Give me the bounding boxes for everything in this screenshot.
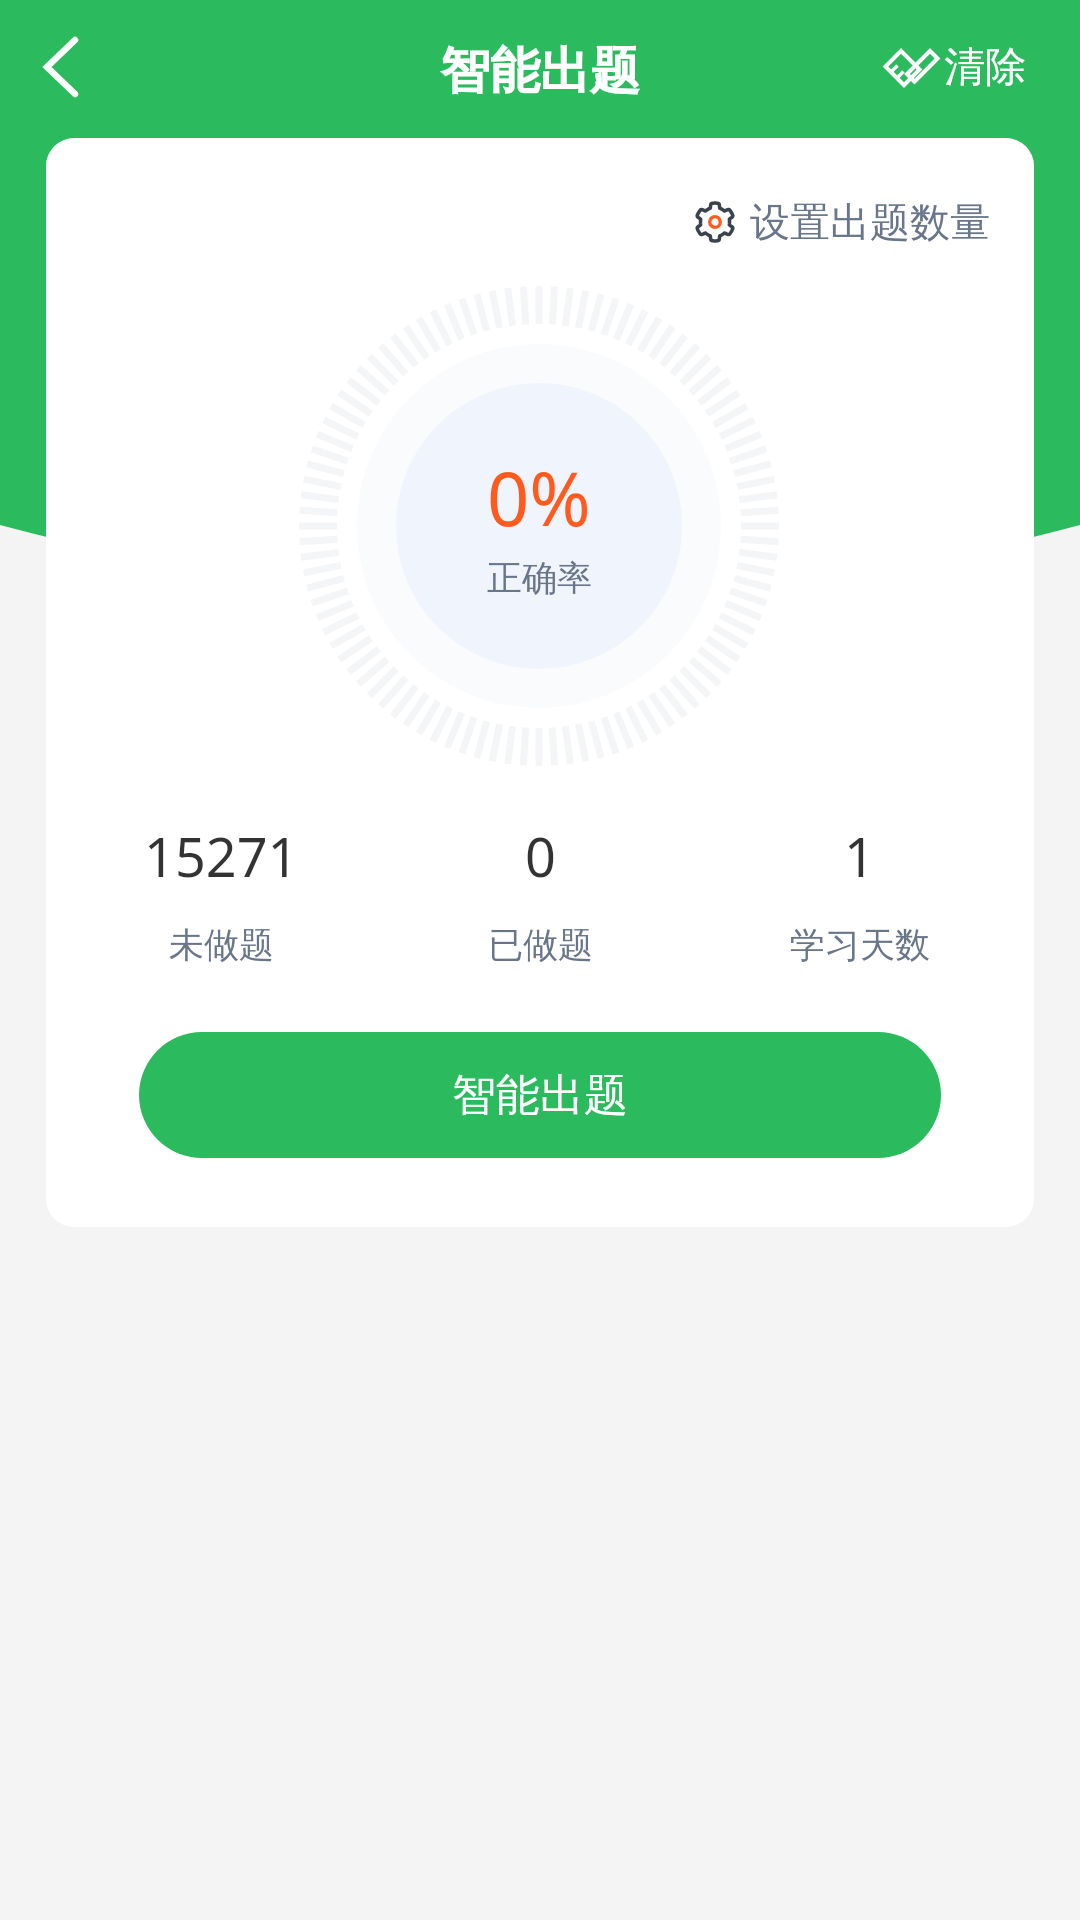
button[interactable]: 智能出题 bbox=[139, 1032, 941, 1158]
button[interactable]: 15271 bbox=[61, 819, 381, 967]
staticText: 智能出题 bbox=[0, 40, 1080, 103]
button[interactable]: Back bbox=[12, 22, 102, 112]
button[interactable]: 清除 bbox=[872, 23, 1026, 113]
staticText: 未做题 bbox=[169, 923, 274, 967]
staticText: 智能出题 bbox=[452, 1068, 628, 1123]
staticText: 已做题 bbox=[488, 923, 593, 967]
staticText: 15271 bbox=[144, 819, 299, 893]
staticText: 学习天数 bbox=[790, 923, 930, 967]
staticText: 0% bbox=[487, 447, 591, 548]
staticText: 1 bbox=[844, 819, 875, 893]
staticText: 正确率 bbox=[487, 556, 592, 600]
button[interactable]: 0 bbox=[381, 819, 700, 967]
staticText: 设置出题数量 bbox=[750, 197, 990, 247]
staticText: 清除 bbox=[944, 42, 1026, 94]
button[interactable]: 1 bbox=[700, 819, 1019, 967]
button[interactable]: 设置出题数量 bbox=[693, 190, 990, 254]
staticText: 0 bbox=[525, 819, 556, 893]
